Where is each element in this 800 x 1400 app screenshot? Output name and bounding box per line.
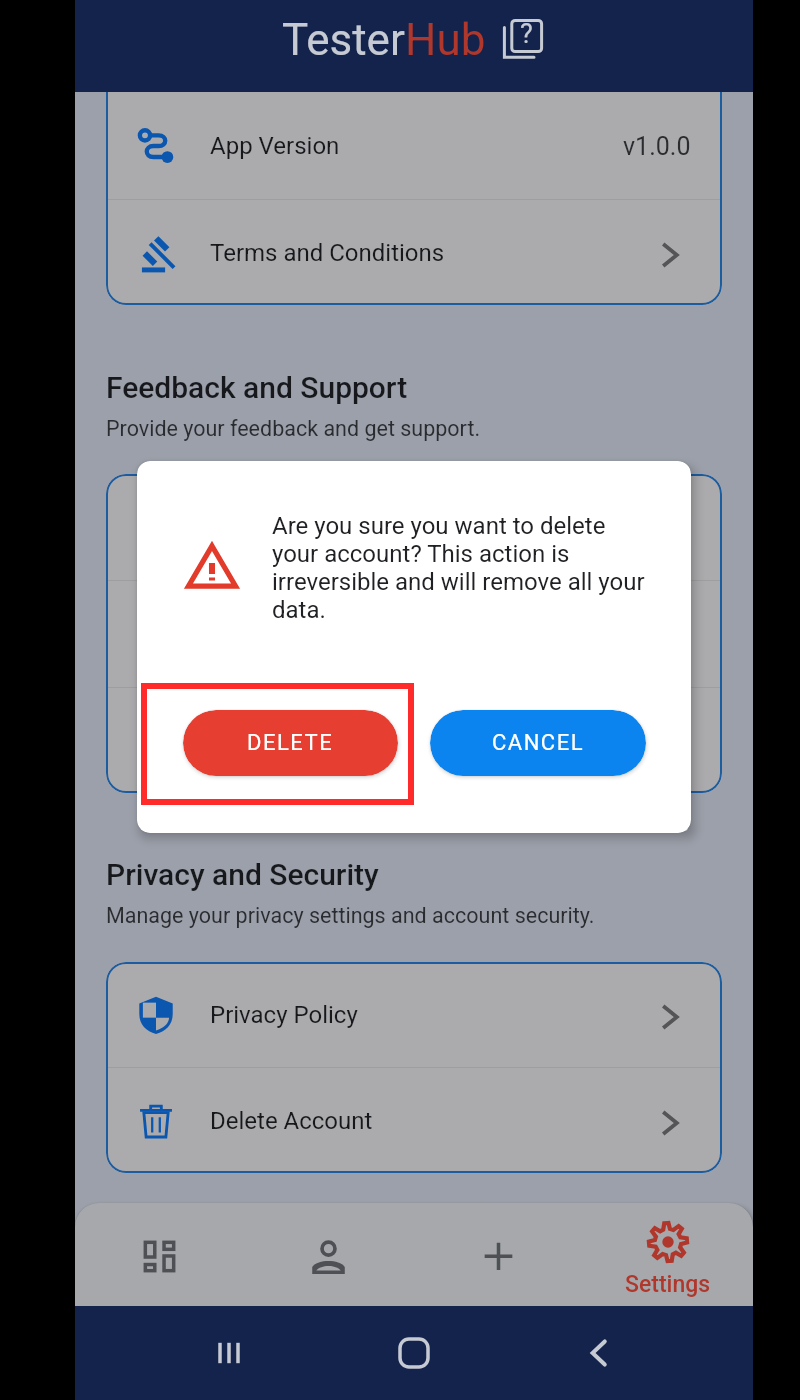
button[interactable]: Settings	[583, 1203, 753, 1306]
staticText: DELETE	[247, 730, 334, 756]
button[interactable]: Send Feedback	[106, 474, 722, 580]
staticText: Hub	[405, 14, 486, 66]
button[interactable]: App Version	[106, 93, 722, 199]
button[interactable]: CANCEL	[430, 710, 646, 776]
button[interactable]: Dashboard	[75, 1203, 244, 1306]
staticText: Tester	[282, 14, 405, 66]
staticText: Terms and Conditions	[210, 239, 445, 267]
button[interactable]: Privacy Policy	[106, 962, 722, 1067]
staticText: Rate the App	[210, 727, 347, 755]
staticText: Are you sure you want to delete your acc…	[272, 512, 649, 624]
button[interactable]: Delete Account	[106, 1068, 722, 1173]
staticText: Feedback and Support	[106, 370, 408, 405]
staticText: Delete Account	[210, 1107, 373, 1135]
staticText: v1.0.0	[623, 132, 691, 161]
staticText: Privacy Policy	[210, 1001, 358, 1029]
button[interactable]: Terms and Conditions	[106, 200, 722, 305]
staticText: Provide your feedback and get support.	[106, 416, 481, 441]
button[interactable]: Profile	[244, 1203, 413, 1306]
staticText: Privacy and Security	[106, 857, 379, 892]
staticText: ?	[520, 18, 533, 50]
staticText: App Version	[210, 132, 340, 160]
button[interactable]: Rate the App	[106, 688, 722, 793]
staticText: Manage your privacy settings and account…	[106, 903, 595, 928]
button[interactable]: Contact Support	[106, 581, 722, 687]
button[interactable]: Add	[413, 1203, 583, 1306]
button[interactable]: DELETE	[183, 710, 398, 776]
button[interactable]: Home	[383, 1322, 445, 1384]
staticText: CANCEL	[492, 730, 585, 756]
button[interactable]: Recents	[198, 1322, 260, 1384]
button[interactable]: Back	[568, 1322, 630, 1384]
staticText: Settings	[625, 1271, 711, 1298]
staticText: Send Feedback	[210, 513, 373, 541]
button[interactable]: Help	[499, 15, 547, 63]
